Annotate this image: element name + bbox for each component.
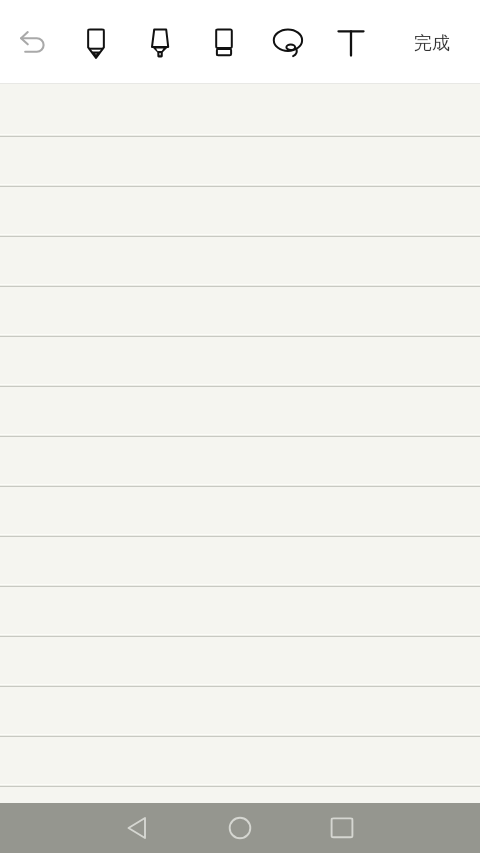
button[interactable]: Pen bbox=[68, 0, 124, 83]
button[interactable]: 完成 bbox=[390, 0, 474, 83]
button[interactable]: Recents bbox=[317, 803, 367, 853]
button[interactable]: Text bbox=[323, 0, 379, 83]
button[interactable]: Lasso bbox=[260, 0, 316, 83]
button[interactable]: Home bbox=[215, 803, 265, 853]
button[interactable]: Undo bbox=[4, 0, 60, 83]
button[interactable]: Eraser bbox=[196, 0, 252, 83]
button[interactable]: Back bbox=[112, 803, 162, 853]
staticText: 完成 bbox=[414, 32, 450, 55]
button[interactable]: Highlighter bbox=[132, 0, 188, 83]
